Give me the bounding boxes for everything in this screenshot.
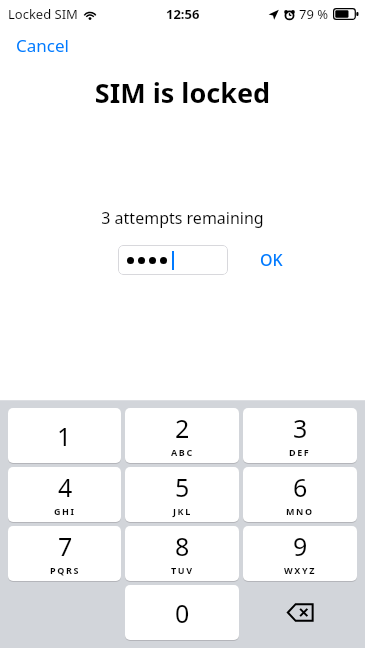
staticText: 6 [293, 470, 308, 504]
staticText: MNO [286, 505, 314, 517]
staticText: TUV [171, 564, 194, 576]
staticText: DEF [289, 446, 311, 458]
staticText: OK [260, 249, 283, 271]
staticText: WXYZ [284, 564, 316, 576]
button[interactable]: OK [256, 245, 287, 275]
staticText: 7 [58, 529, 73, 563]
staticText: GHI [54, 505, 76, 517]
staticText: SIM is locked [0, 74, 365, 111]
staticText: 3 [293, 411, 308, 445]
button[interactable]: 8 [125, 526, 239, 581]
button[interactable]: 4 [8, 467, 121, 522]
staticText: JKL [173, 505, 192, 517]
staticText: Locked SIM [8, 5, 78, 23]
staticText: 5 [175, 470, 190, 504]
staticText: 4 [58, 470, 73, 504]
button[interactable]: 3 [243, 408, 357, 463]
button[interactable]: 7 [8, 526, 121, 581]
staticText: 9 [293, 529, 308, 563]
staticText: 2 [175, 411, 190, 445]
button[interactable]: 2 [125, 408, 239, 463]
staticText: 3 attempts remaining [0, 207, 365, 229]
button[interactable]: Delete [243, 585, 357, 640]
staticText: 8 [175, 529, 190, 563]
button[interactable]: 5 [125, 467, 239, 522]
staticText: PQRS [50, 564, 80, 576]
button[interactable] [118, 245, 228, 275]
button[interactable]: Cancel [0, 30, 85, 61]
button[interactable]: 9 [243, 526, 357, 581]
staticText: ABC [171, 446, 194, 458]
staticText: 1 [57, 419, 72, 453]
staticText: 79 % [299, 5, 329, 23]
button[interactable]: 0 [125, 585, 239, 640]
button[interactable]: 1 [8, 408, 121, 463]
staticText: 0 [175, 596, 190, 630]
button[interactable]: 6 [243, 467, 357, 522]
staticText: Cancel [16, 34, 69, 57]
staticText: 12:56 [166, 5, 200, 23]
